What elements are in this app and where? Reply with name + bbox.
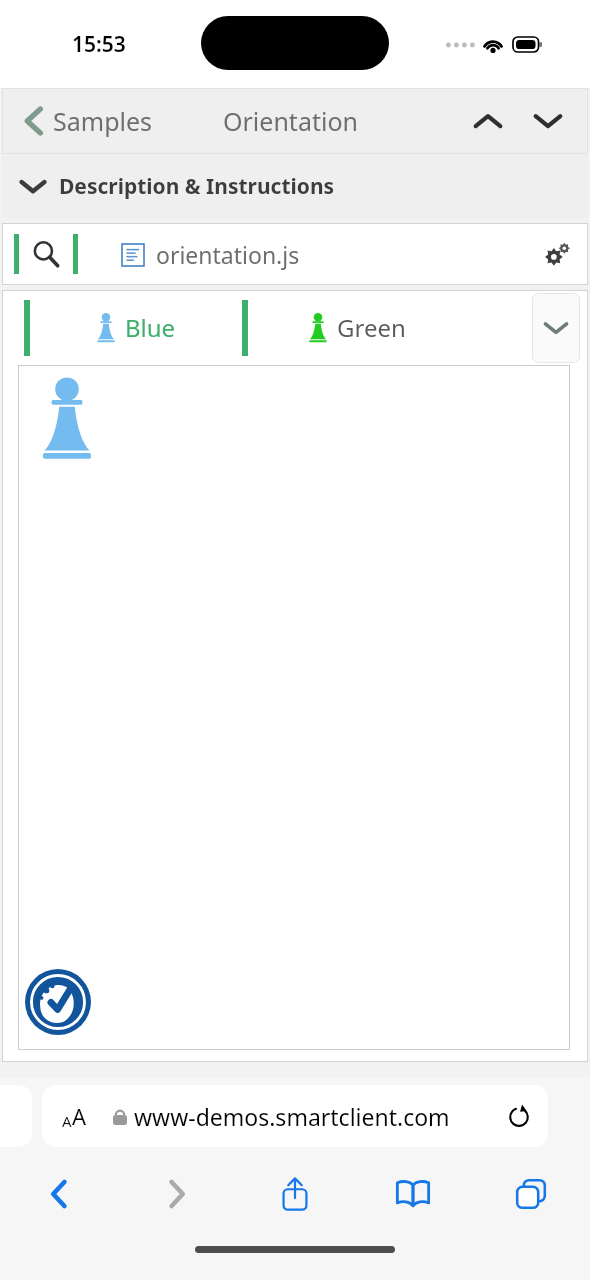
button[interactable]: Green [248, 290, 466, 365]
staticText: A [72, 1101, 87, 1131]
button[interactable]: More tabs [532, 293, 580, 363]
button[interactable]: Description & Instructions [2, 154, 588, 218]
button[interactable]: Blue [30, 290, 242, 365]
button[interactable]: Next [526, 105, 570, 137]
button[interactable]: Bookmarks [354, 1154, 472, 1234]
staticText: Samples [53, 104, 153, 138]
button[interactable]: Share [236, 1154, 354, 1234]
button[interactable]: A [42, 1085, 548, 1147]
staticText: Description & Instructions [59, 172, 335, 201]
button[interactable]: Search [19, 231, 73, 277]
button[interactable]: Back [0, 1154, 118, 1234]
staticText: Green [337, 311, 406, 344]
staticText: www-demos.smartclient.com [134, 1101, 498, 1132]
button[interactable]: Reload [498, 1105, 540, 1127]
staticText: Blue [125, 311, 176, 344]
staticText: Orientation [223, 104, 358, 138]
button[interactable]: Forward [118, 1154, 236, 1234]
button[interactable]: Settings [526, 230, 588, 278]
staticText: orientation.js [156, 239, 300, 270]
button[interactable]: orientation.js [122, 233, 300, 276]
staticText: A [62, 1111, 72, 1131]
button[interactable]: SmartClient [24, 968, 92, 1036]
button[interactable]: Tabs [472, 1154, 590, 1234]
button[interactable]: Previous [466, 105, 510, 137]
staticText: 15:53 [72, 30, 126, 59]
button[interactable]: Samples [18, 98, 159, 144]
